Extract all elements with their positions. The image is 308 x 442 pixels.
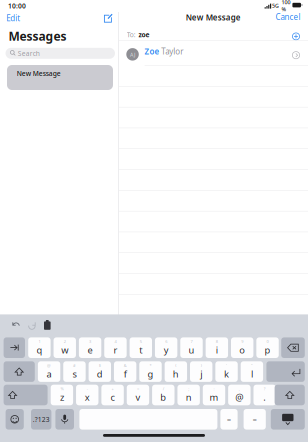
button[interactable]: – <box>220 409 238 430</box>
button[interactable]: " <box>241 361 263 382</box>
staticText: f <box>124 368 127 380</box>
button[interactable]: New Message <box>98 11 118 25</box>
button[interactable]: ' <box>215 361 238 382</box>
button[interactable]: ) <box>190 361 212 382</box>
staticText: " <box>251 363 253 368</box>
staticText: i <box>216 344 218 356</box>
button[interactable]: $ <box>89 361 111 382</box>
staticText: o <box>239 344 245 356</box>
staticText: Zoe <box>144 46 159 57</box>
staticText: $ <box>99 363 101 368</box>
button[interactable]: ? <box>253 385 276 405</box>
button[interactable] <box>55 409 74 430</box>
button[interactable]: - <box>76 385 98 405</box>
button[interactable] <box>271 409 305 430</box>
button[interactable]: Add recipient <box>289 30 303 42</box>
staticText: q <box>36 344 42 356</box>
button[interactable] <box>275 385 305 405</box>
staticText: n <box>186 391 192 403</box>
staticText: 0 <box>267 339 269 344</box>
staticText: ; <box>188 386 189 391</box>
staticText: d <box>97 368 103 380</box>
staticText: ( <box>175 363 176 368</box>
button[interactable]: 4 <box>104 337 127 358</box>
staticText: c <box>111 391 115 403</box>
staticText: & <box>124 363 127 368</box>
staticText: @ <box>235 391 243 403</box>
staticText: ? <box>264 386 266 391</box>
staticText: a <box>47 368 52 380</box>
button[interactable] <box>266 361 305 382</box>
staticText: – <box>253 414 257 425</box>
button[interactable]: Cancel <box>271 11 301 23</box>
button[interactable]: 3 <box>79 337 101 358</box>
staticText: – <box>227 414 231 425</box>
staticText: x <box>85 391 90 403</box>
button[interactable]: Paste <box>40 317 56 333</box>
button[interactable]: 7 <box>180 337 203 358</box>
staticText: u <box>188 344 194 356</box>
button[interactable] <box>4 337 25 358</box>
staticText: 4 <box>114 339 116 344</box>
button[interactable]: , <box>228 385 251 405</box>
staticText: 100% <box>281 0 290 13</box>
button[interactable]: * <box>139 361 162 382</box>
staticText: 9 <box>241 339 243 344</box>
staticText: 3 <box>89 339 91 344</box>
button[interactable]: 5 <box>130 337 152 358</box>
staticText: Cancel <box>276 12 301 22</box>
button[interactable]: 8 <box>206 337 228 358</box>
button[interactable]: 1 <box>28 337 51 358</box>
staticText: Taylor <box>161 46 183 57</box>
staticText: New Message <box>17 69 61 78</box>
button[interactable]: 6 <box>155 337 177 358</box>
staticText: = <box>137 386 139 391</box>
staticText: e <box>88 344 93 356</box>
button[interactable]: .?123 <box>31 409 51 430</box>
staticText: , <box>239 386 240 391</box>
button[interactable]: / <box>152 385 174 405</box>
staticText: ) <box>201 363 202 368</box>
button[interactable]: = <box>127 385 149 405</box>
staticText: - <box>87 386 88 391</box>
button[interactable]: % <box>51 385 73 405</box>
button[interactable] <box>4 361 35 382</box>
staticText: r <box>113 344 117 356</box>
button[interactable] <box>281 337 305 358</box>
staticText: Messages <box>8 28 66 44</box>
button[interactable]: @ <box>38 361 60 382</box>
button[interactable]: New Message <box>7 65 113 90</box>
button[interactable]: : <box>203 385 225 405</box>
button[interactable] <box>79 409 217 430</box>
button[interactable] <box>6 409 24 430</box>
staticText: s <box>72 368 76 380</box>
staticText: 6 <box>165 339 167 344</box>
staticText: g <box>147 368 153 380</box>
button[interactable]: ( <box>165 361 187 382</box>
button[interactable]: Search <box>5 48 115 59</box>
button[interactable]: ; <box>177 385 200 405</box>
staticText: t <box>139 344 142 356</box>
staticText: z <box>60 391 64 403</box>
staticText: l <box>251 368 253 380</box>
button[interactable]: 2 <box>53 337 76 358</box>
staticText: m <box>209 391 218 403</box>
button[interactable]: Undo <box>8 317 24 333</box>
button[interactable]: Edit <box>6 12 26 24</box>
staticText: * <box>149 363 151 368</box>
button[interactable]: Redo <box>24 317 40 333</box>
button[interactable]: 9 <box>231 337 253 358</box>
button[interactable]: – <box>244 409 266 430</box>
staticText: 7 <box>190 339 192 344</box>
staticText: . <box>263 391 266 403</box>
staticText: k <box>224 368 229 380</box>
staticText: 5 <box>140 339 142 344</box>
button[interactable]: & <box>114 361 136 382</box>
staticText: zoe <box>138 30 149 39</box>
staticText: w <box>61 344 68 356</box>
button[interactable]: # <box>63 361 86 382</box>
button[interactable] <box>4 385 48 405</box>
staticText: y <box>164 344 169 356</box>
button[interactable]: 0 <box>256 337 279 358</box>
button[interactable]: + <box>101 385 124 405</box>
